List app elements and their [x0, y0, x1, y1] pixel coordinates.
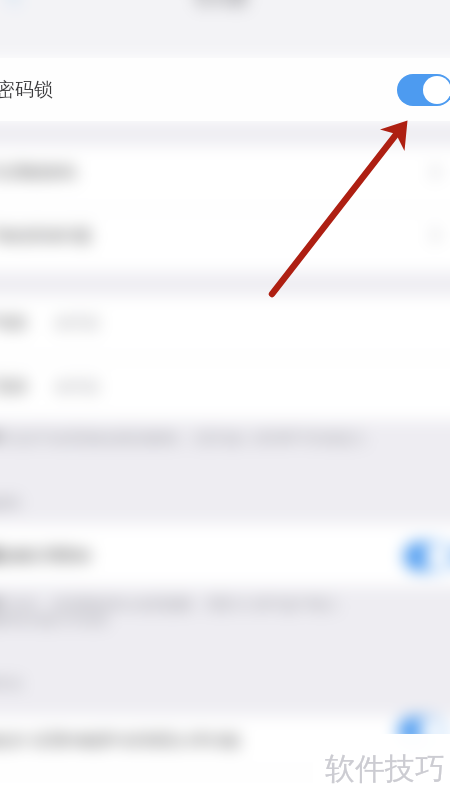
staticText: 隐藏应用图标	[0, 546, 92, 566]
staticText: 面容	[0, 377, 28, 397]
button[interactable]: Toggle	[404, 542, 450, 571]
staticText: 密码才能打开应用	[0, 612, 108, 630]
staticText: 密码锁	[196, 0, 247, 9]
button[interactable]: Toggle	[398, 717, 446, 746]
staticText: 应用锁密码	[0, 163, 76, 183]
staticText: 开启后，应用图标将从桌面隐藏，需要 在 拨号盘中输入	[0, 594, 340, 613]
staticText: 允许 应用内截屏与录屏及分享功能	[0, 729, 241, 751]
button[interactable]: 密码锁	[0, 58, 450, 121]
staticText: 隐私	[0, 494, 22, 510]
staticText: 密码锁	[0, 78, 53, 102]
staticText: 指纹	[0, 313, 28, 333]
staticText: 软件技巧	[325, 750, 445, 788]
button[interactable]: Password lock toggle	[397, 74, 450, 106]
staticText: 开启后可使用指纹或面容解锁，无需 输入 密码即可快速进入	[0, 428, 368, 447]
staticText: 修改密保问题	[0, 226, 92, 246]
